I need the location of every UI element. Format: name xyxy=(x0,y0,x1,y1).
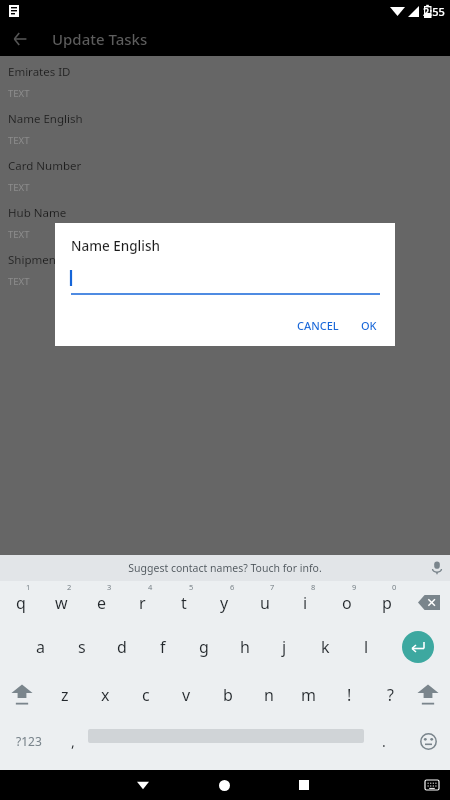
button[interactable]: c xyxy=(125,673,166,717)
button[interactable]: Shift xyxy=(406,673,450,717)
button[interactable]: 7 xyxy=(244,581,285,623)
button[interactable]: b xyxy=(207,673,248,717)
button[interactable]: Name English xyxy=(0,107,450,154)
button[interactable]: 4 xyxy=(122,581,163,623)
staticText: w xyxy=(55,592,68,614)
button[interactable]: 9 xyxy=(326,581,367,623)
staticText: 6 xyxy=(230,582,235,592)
button[interactable]: Back xyxy=(128,770,158,800)
staticText: z xyxy=(61,684,69,706)
button[interactable]: g xyxy=(183,625,224,669)
button[interactable]: Shipment Number xyxy=(0,248,450,295)
button[interactable]: f xyxy=(142,625,183,669)
staticText: b xyxy=(223,684,233,706)
staticText: 4 xyxy=(148,582,153,592)
button[interactable]: 3 xyxy=(81,581,122,623)
staticText: y xyxy=(220,592,229,614)
button[interactable]: n xyxy=(248,673,289,717)
staticText: TEXT xyxy=(8,134,30,147)
staticText: 2:55 xyxy=(423,4,445,19)
staticText: l xyxy=(364,636,369,658)
button[interactable]: Voice input xyxy=(424,555,450,581)
staticText: Hub Name xyxy=(8,205,67,221)
staticText: k xyxy=(321,636,330,658)
button[interactable]: 2 xyxy=(41,581,82,623)
button[interactable]: , xyxy=(58,719,88,763)
button[interactable]: Card Number xyxy=(0,154,450,201)
button[interactable]: j xyxy=(264,625,305,669)
button[interactable]: 5 xyxy=(163,581,204,623)
button[interactable]: Suggest contact names? Touch for info. xyxy=(128,561,322,575)
button[interactable]: Home xyxy=(209,770,239,800)
staticText: m xyxy=(301,684,316,706)
staticText: TEXT xyxy=(8,87,30,100)
staticText: . xyxy=(382,732,386,751)
button[interactable]: ! xyxy=(329,673,370,717)
staticText: 1 xyxy=(26,582,31,592)
staticText: d xyxy=(117,636,127,658)
button[interactable]: z xyxy=(44,673,85,717)
button[interactable]: 8 xyxy=(285,581,326,623)
staticText: t xyxy=(181,592,187,614)
button[interactable]: l xyxy=(346,625,387,669)
staticText: OK xyxy=(361,318,377,333)
staticText: Shipment Number xyxy=(8,252,108,268)
button[interactable]: m xyxy=(288,673,329,717)
staticText: o xyxy=(342,592,352,614)
staticText: CANCEL xyxy=(297,318,339,333)
staticText: TEXT xyxy=(8,228,30,241)
staticText: p xyxy=(382,592,392,614)
staticText: 8 xyxy=(311,582,316,592)
button[interactable]: 0 xyxy=(366,581,407,623)
staticText: 9 xyxy=(352,582,357,592)
staticText: Name English xyxy=(71,237,160,255)
staticText: j xyxy=(282,636,287,658)
staticText: c xyxy=(142,684,150,706)
staticText: g xyxy=(199,636,209,658)
button[interactable]: ? xyxy=(370,673,411,717)
staticText: s xyxy=(78,636,86,658)
staticText: Card Number xyxy=(8,158,82,174)
button[interactable]: Emirates ID xyxy=(0,60,450,107)
staticText: , xyxy=(71,732,75,751)
staticText: Name English xyxy=(8,111,83,127)
staticText: ? xyxy=(387,684,394,706)
button[interactable]: Text input xyxy=(71,269,380,295)
staticText: 3 xyxy=(107,582,112,592)
button[interactable]: x xyxy=(85,673,126,717)
button[interactable]: d xyxy=(101,625,142,669)
staticText: n xyxy=(264,684,274,706)
button[interactable]: Recent apps xyxy=(289,770,319,800)
button[interactable]: k xyxy=(305,625,346,669)
button[interactable]: 1 xyxy=(0,581,41,623)
button[interactable]: Switch keyboard xyxy=(420,773,444,797)
button[interactable]: Hub Name xyxy=(0,201,450,248)
button[interactable]: Enter xyxy=(396,625,440,669)
button[interactable]: v xyxy=(166,673,207,717)
button[interactable]: 6 xyxy=(204,581,245,623)
staticText: a xyxy=(36,636,45,658)
staticText: h xyxy=(240,636,250,658)
button[interactable]: h xyxy=(224,625,265,669)
button[interactable]: Back xyxy=(0,22,40,56)
button[interactable]: OK xyxy=(353,313,385,338)
staticText: v xyxy=(182,684,191,706)
button[interactable]: a xyxy=(20,625,61,669)
staticText: r xyxy=(139,592,146,614)
button[interactable]: s xyxy=(61,625,102,669)
staticText: Update Tasks xyxy=(52,29,148,49)
button[interactable]: ?123 xyxy=(0,719,58,763)
staticText: f xyxy=(160,636,166,658)
staticText: ?123 xyxy=(16,733,42,749)
staticText: TEXT xyxy=(8,181,30,194)
button[interactable]: . xyxy=(364,719,404,763)
button[interactable]: Emoji xyxy=(406,719,450,763)
staticText: i xyxy=(303,592,308,614)
button[interactable]: Shift xyxy=(0,673,44,717)
button[interactable]: Backspace xyxy=(407,581,450,623)
staticText: e xyxy=(97,592,107,614)
staticText: x xyxy=(101,684,110,706)
button[interactable]: CANCEL xyxy=(289,313,347,338)
staticText: 5 xyxy=(189,582,194,592)
